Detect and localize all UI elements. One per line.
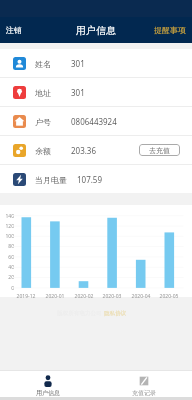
staticText: 2020-02 xyxy=(72,293,96,300)
staticText: 用户信息 xyxy=(36,389,60,397)
staticText: 0 xyxy=(2,285,14,292)
staticText: 余额 xyxy=(35,146,51,156)
staticText: 注销 xyxy=(6,25,22,35)
staticText: 203.36 xyxy=(71,145,97,156)
staticText: 户号 xyxy=(35,117,51,127)
staticText: 120 xyxy=(2,223,14,230)
staticText: 2020-04 xyxy=(129,293,153,300)
staticText: 20 xyxy=(2,274,14,281)
staticText: 充值记录 xyxy=(132,389,156,397)
staticText: 100 xyxy=(2,233,14,240)
button[interactable]: 户号 xyxy=(0,107,192,135)
staticText: 用户信息 xyxy=(76,24,116,37)
button[interactable]: 用户信息 xyxy=(0,371,96,397)
button[interactable]: 提醒事项 xyxy=(148,17,192,43)
button[interactable]: 姓名 xyxy=(0,49,192,77)
button[interactable]: 注销 xyxy=(0,17,28,43)
staticText: 2020-05 xyxy=(157,293,181,300)
staticText: 60 xyxy=(2,254,14,261)
staticText: 去充值 xyxy=(149,146,170,155)
staticText: 姓名 xyxy=(35,59,51,69)
button[interactable]: 地址 xyxy=(0,78,192,106)
staticText: 2020-03 xyxy=(100,293,124,300)
staticText: 301 xyxy=(71,58,85,69)
staticText: 40 xyxy=(2,264,14,271)
staticText: 2019-12 xyxy=(14,293,38,300)
button[interactable]: 隐私协议 xyxy=(104,310,126,317)
button[interactable]: 充值记录 xyxy=(96,371,192,397)
staticText: 107.59 xyxy=(77,174,103,185)
staticText: 隐私协议 xyxy=(104,310,126,317)
button[interactable]: 当月电量 xyxy=(0,165,192,193)
button[interactable]: 去充值 xyxy=(139,144,180,156)
button[interactable]: 余额 xyxy=(0,136,192,164)
staticText: 提醒事项 xyxy=(154,25,186,35)
staticText: 140 xyxy=(2,213,14,220)
staticText: 2020-01 xyxy=(43,293,67,300)
staticText: 0806443924 xyxy=(71,116,117,127)
staticText: 80 xyxy=(2,243,14,250)
staticText: 当月电量 xyxy=(35,175,67,185)
staticText: 地址 xyxy=(35,88,51,98)
staticText: 301 xyxy=(71,87,85,98)
